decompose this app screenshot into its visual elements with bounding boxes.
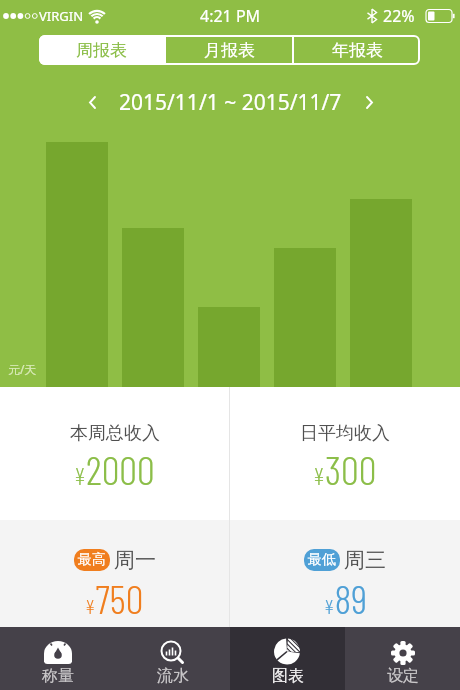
staticText: 周报表: [76, 40, 127, 61]
staticText: ¥300: [313, 445, 377, 493]
staticText: VIRGIN: [39, 7, 84, 25]
staticText: 周一: [114, 547, 156, 573]
staticText: 流水: [157, 666, 189, 686]
button[interactable]: 最高: [0, 520, 229, 627]
staticText: 2015/11/1 ~ 2015/11/7: [119, 88, 342, 117]
button[interactable]: 最低: [230, 520, 460, 627]
staticText: 最高: [78, 551, 106, 569]
button[interactable]: 设定: [345, 627, 460, 690]
button[interactable]: 图表: [230, 627, 345, 690]
button[interactable]: 日平均收入: [230, 387, 460, 520]
staticText: 最低: [308, 551, 336, 569]
button[interactable]: [365, 95, 374, 110]
staticText: 4:21 PM: [200, 5, 261, 27]
staticText: 22%: [383, 5, 415, 27]
staticText: 设定: [387, 666, 419, 686]
staticText: 年报表: [332, 40, 383, 61]
button[interactable]: 年报表: [294, 35, 420, 65]
staticText: 月报表: [204, 40, 255, 61]
button[interactable]: 流水: [115, 627, 230, 690]
button[interactable]: 本周总收入: [0, 387, 229, 520]
staticText: 周三: [344, 547, 386, 573]
button[interactable]: 月报表: [166, 35, 292, 65]
staticText: 日平均收入: [300, 422, 390, 445]
staticText: 本周总收入: [70, 422, 160, 445]
staticText: 称量: [42, 666, 74, 686]
staticText: ¥750: [85, 574, 144, 622]
button[interactable]: 周报表: [39, 35, 164, 65]
staticText: ¥2000: [74, 445, 155, 493]
button[interactable]: [88, 95, 97, 110]
staticText: ¥89: [324, 574, 367, 622]
staticText: 图表: [272, 666, 304, 686]
staticText: 元/天: [8, 361, 37, 377]
button[interactable]: 称量: [0, 627, 115, 690]
